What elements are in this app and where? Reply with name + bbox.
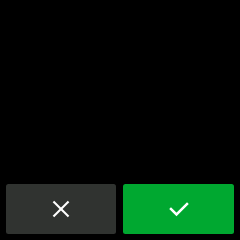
button[interactable]: Dismiss [6,184,116,234]
button[interactable]: Confirm [123,184,234,234]
